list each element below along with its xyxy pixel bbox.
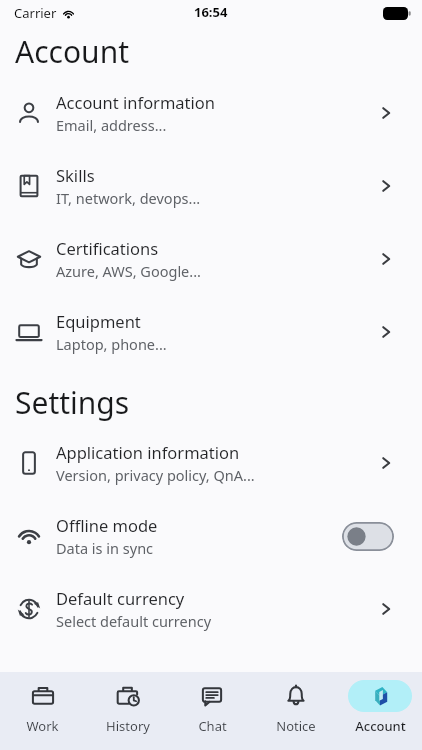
staticText: Account bbox=[355, 717, 406, 735]
button[interactable]: Chat bbox=[170, 672, 254, 750]
button[interactable]: Offline mode toggle bbox=[342, 522, 394, 551]
staticText: Carrier bbox=[14, 4, 57, 22]
staticText: Offline mode bbox=[56, 514, 158, 536]
button[interactable]: Notice bbox=[254, 672, 338, 750]
other: Open Certifications bbox=[378, 251, 394, 267]
button[interactable]: Offline mode bbox=[0, 500, 422, 572]
staticText: History bbox=[106, 717, 150, 735]
button[interactable]: Work bbox=[0, 672, 85, 750]
staticText: Select default currency bbox=[56, 611, 212, 631]
staticText: Account information bbox=[56, 91, 216, 113]
staticText: Email, address... bbox=[56, 115, 167, 135]
staticText: Settings bbox=[15, 382, 130, 423]
button[interactable]: History bbox=[85, 672, 170, 750]
button[interactable]: Account information bbox=[0, 77, 422, 149]
staticText: Version, privacy policy, QnA... bbox=[56, 465, 255, 485]
staticText: Notice bbox=[276, 717, 316, 735]
other: Open Equipment bbox=[378, 324, 394, 340]
staticText: Skills bbox=[56, 164, 95, 186]
staticText: Laptop, phone... bbox=[56, 334, 167, 354]
button[interactable]: Equipment bbox=[0, 296, 422, 368]
other: Open Application information bbox=[378, 455, 394, 471]
staticText: Account bbox=[15, 31, 130, 72]
other: Open Account information bbox=[378, 105, 394, 121]
button[interactable]: Certifications bbox=[0, 223, 422, 295]
other: Open Skills bbox=[378, 178, 394, 194]
button[interactable]: Application information bbox=[0, 427, 422, 499]
staticText: Data is in sync bbox=[56, 538, 154, 558]
other: Open Default currency bbox=[378, 601, 394, 617]
staticText: Chat bbox=[198, 717, 227, 735]
button[interactable]: Default currency bbox=[0, 573, 422, 645]
staticText: Azure, AWS, Google... bbox=[56, 261, 201, 281]
staticText: Default currency bbox=[56, 587, 185, 609]
staticText: Equipment bbox=[56, 310, 141, 332]
staticText: 16:54 bbox=[194, 3, 228, 21]
staticText: IT, network, devops... bbox=[56, 188, 201, 208]
staticText: Certifications bbox=[56, 237, 159, 259]
staticText: Application information bbox=[56, 441, 240, 463]
button[interactable]: Skills bbox=[0, 150, 422, 222]
button[interactable]: Account bbox=[338, 672, 422, 750]
staticText: Work bbox=[26, 717, 59, 735]
